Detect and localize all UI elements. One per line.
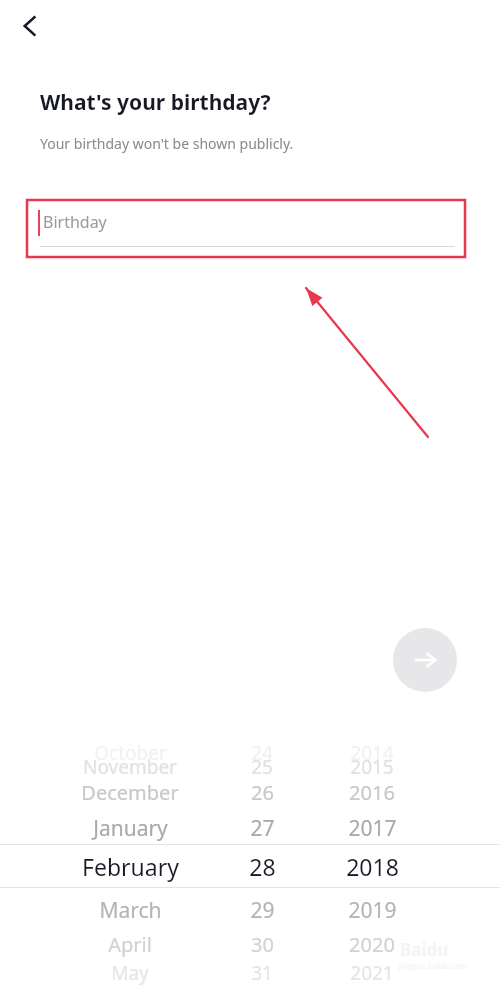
- staticText: Baidu: [400, 938, 449, 961]
- staticText: 2017: [348, 814, 397, 843]
- staticText: 2014: [350, 740, 394, 766]
- staticText: 2020: [349, 931, 395, 958]
- staticText: jingyan.baidu.com: [398, 960, 468, 971]
- button[interactable]: May: [0, 958, 500, 988]
- staticText: March: [99, 896, 162, 925]
- staticText: 2015: [350, 754, 394, 780]
- staticText: May: [111, 960, 149, 986]
- staticText: 26: [251, 779, 274, 806]
- staticText: December: [81, 779, 179, 806]
- staticText: January: [93, 814, 168, 843]
- staticText: February: [82, 851, 179, 882]
- staticText: 27: [250, 814, 275, 843]
- staticText: 2021: [350, 960, 394, 986]
- staticText: April: [108, 931, 152, 958]
- staticText: 25: [251, 754, 273, 780]
- staticText: Your birthday won't be shown publicly.: [40, 134, 294, 153]
- button[interactable]: March: [0, 892, 500, 928]
- staticText: 28: [249, 851, 276, 882]
- staticText: Birthday: [43, 211, 107, 233]
- staticText: 24: [251, 740, 273, 766]
- staticText: 30: [251, 931, 274, 958]
- button[interactable]: December: [0, 776, 500, 808]
- button[interactable]: Next: [393, 628, 457, 692]
- staticText: What's your birthday?: [40, 88, 271, 117]
- staticText: 2016: [349, 779, 395, 806]
- button[interactable]: February: [0, 845, 500, 887]
- staticText: 29: [250, 896, 275, 925]
- staticText: 2019: [348, 896, 397, 925]
- staticText: November: [83, 754, 177, 780]
- button[interactable]: April: [0, 928, 500, 960]
- button[interactable]: Back: [6, 2, 54, 50]
- button[interactable]: Birthday field: [30, 200, 460, 252]
- staticText: October: [94, 740, 167, 766]
- button[interactable]: November: [0, 752, 500, 782]
- staticText: 31: [251, 960, 273, 986]
- staticText: 2018: [346, 851, 399, 882]
- button[interactable]: January: [0, 810, 500, 846]
- button[interactable]: October: [0, 740, 500, 766]
